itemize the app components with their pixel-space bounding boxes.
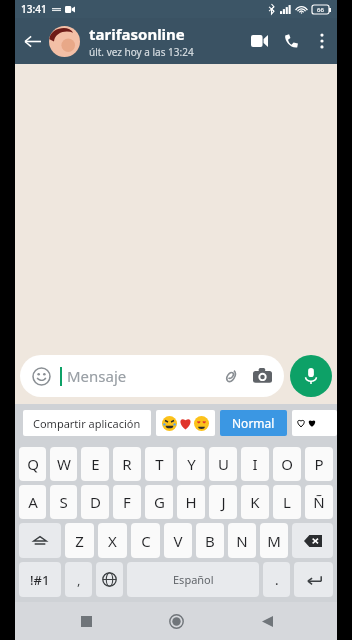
button[interactable]: Home <box>156 602 196 640</box>
staticText: Compartir aplicación <box>33 416 141 431</box>
staticText: K <box>250 492 260 512</box>
staticText: J <box>221 492 226 512</box>
button[interactable]: J <box>209 485 237 519</box>
button[interactable]: Ñ <box>305 485 333 519</box>
button[interactable]: Enter <box>294 562 333 597</box>
staticText: A <box>28 492 38 512</box>
staticText: últ. vez hoy a las 13:24 <box>89 45 194 59</box>
button[interactable]: K <box>241 485 269 519</box>
button[interactable]: Voice call <box>275 25 307 57</box>
staticText: V <box>173 531 183 551</box>
button[interactable] <box>156 410 215 436</box>
button[interactable] <box>292 410 337 436</box>
button[interactable]: Emoji <box>30 365 52 387</box>
staticText: !#1 <box>30 571 50 589</box>
button[interactable]: S <box>50 485 77 519</box>
staticText: P <box>314 454 324 474</box>
button[interactable]: W <box>50 447 77 481</box>
button[interactable]: Q <box>19 447 46 481</box>
button[interactable]: T <box>145 447 173 481</box>
staticText: S <box>59 492 68 512</box>
staticText: Mensaje <box>67 366 127 386</box>
button[interactable]: , <box>65 562 92 597</box>
staticText: X <box>108 531 117 551</box>
button[interactable]: Record voice message <box>290 355 332 397</box>
button[interactable]: G <box>145 485 173 519</box>
button[interactable]: Compartir aplicación <box>23 410 151 436</box>
button[interactable]: Emoji <box>20 355 284 397</box>
staticText: M <box>267 531 281 551</box>
button[interactable]: N <box>228 523 256 558</box>
staticText: Español <box>173 572 214 587</box>
staticText: D <box>90 492 101 512</box>
staticText: N <box>236 531 248 551</box>
button[interactable]: O <box>273 447 301 481</box>
button[interactable]: F <box>113 485 141 519</box>
button[interactable]: Profile photo <box>49 26 80 57</box>
staticText: H <box>185 492 197 512</box>
button[interactable]: X <box>98 523 127 558</box>
button[interactable]: Back <box>15 24 49 58</box>
button[interactable]: L <box>273 485 301 519</box>
staticText: I <box>252 454 258 474</box>
staticText: E <box>91 454 100 474</box>
button[interactable]: Video call <box>243 25 275 57</box>
staticText: B <box>205 531 215 551</box>
button[interactable]: A <box>19 485 46 519</box>
staticText: W <box>57 454 71 474</box>
staticText: 13:41 <box>21 2 47 16</box>
button[interactable]: E <box>81 447 109 481</box>
button[interactable]: Y <box>177 447 205 481</box>
button[interactable]: . <box>263 562 290 597</box>
staticText: Z <box>75 531 84 551</box>
staticText: tarifasonline <box>89 24 185 44</box>
button[interactable]: Camera <box>250 364 274 388</box>
button[interactable]: Attach <box>218 364 242 388</box>
button[interactable]: Z <box>65 523 94 558</box>
button[interactable]: D <box>81 485 109 519</box>
button[interactable]: U <box>209 447 237 481</box>
button[interactable]: I <box>241 447 269 481</box>
button[interactable]: Español <box>127 562 259 597</box>
button[interactable]: C <box>131 523 160 558</box>
staticText: F <box>123 492 131 512</box>
button[interactable]: Shift <box>19 523 61 558</box>
button[interactable]: H <box>177 485 205 519</box>
staticText: R <box>122 454 132 474</box>
button[interactable]: tarifasonline <box>89 24 243 59</box>
staticText: C <box>141 531 151 551</box>
button[interactable]: B <box>196 523 224 558</box>
button[interactable]: Recent apps <box>66 602 106 640</box>
staticText: O <box>281 454 293 474</box>
staticText: T <box>155 454 164 474</box>
staticText: Q <box>27 454 39 474</box>
button[interactable]: More options <box>307 26 337 56</box>
button[interactable]: Normal <box>220 410 287 436</box>
button[interactable]: Back <box>247 602 287 640</box>
button[interactable]: Backspace <box>292 523 333 558</box>
button[interactable]: R <box>113 447 141 481</box>
staticText: , <box>77 571 81 589</box>
button[interactable]: Change language <box>96 562 123 597</box>
button[interactable]: V <box>164 523 192 558</box>
button[interactable]: !#1 <box>19 562 61 597</box>
staticText: . <box>275 571 279 589</box>
staticText: Y <box>187 454 196 474</box>
staticText: Ñ <box>313 492 325 512</box>
button[interactable]: M <box>260 523 288 558</box>
staticText: L <box>283 492 291 512</box>
staticText: G <box>154 492 165 512</box>
button[interactable]: P <box>305 447 333 481</box>
staticText: U <box>218 454 229 474</box>
staticText: Normal <box>232 415 275 431</box>
staticText: 66 <box>317 6 324 14</box>
